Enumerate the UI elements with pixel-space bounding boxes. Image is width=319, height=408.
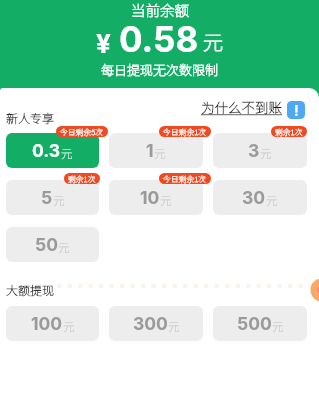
staticText: 今日剩余1次 <box>163 173 207 184</box>
staticText: 元 <box>260 145 272 162</box>
staticText: 0.3 <box>32 140 61 161</box>
staticText: 元 <box>53 192 65 209</box>
staticText: 0.58 <box>119 18 199 60</box>
staticText: 今日剩余5次 <box>60 126 104 137</box>
staticText: 剩余1次 <box>68 173 96 184</box>
button[interactable]: 1 <box>109 133 203 168</box>
staticText: 100 <box>31 313 63 334</box>
other: 帮助 <box>287 101 305 119</box>
staticText: 元 <box>61 145 73 162</box>
staticText: 元 <box>203 27 223 56</box>
staticText: 元 <box>160 192 172 209</box>
staticText: 3 <box>248 140 260 161</box>
button[interactable]: 30 <box>213 180 307 215</box>
staticText: 50 <box>35 234 58 255</box>
staticText: 元 <box>154 145 166 162</box>
staticText: 剩余1次 <box>275 126 303 137</box>
staticText: 5 <box>41 187 53 208</box>
staticText: 元 <box>266 192 278 209</box>
staticText: ! <box>294 102 299 119</box>
staticText: 30 <box>242 187 266 208</box>
button[interactable]: 为什么不到账 <box>201 100 305 120</box>
staticText: 10 <box>140 187 160 208</box>
staticText: 元 <box>58 239 70 256</box>
button[interactable]: 500 <box>213 306 307 341</box>
staticText: 1 <box>146 140 154 161</box>
staticText: ¥ <box>96 28 111 59</box>
staticText: 每日提现无次数限制 <box>101 60 219 79</box>
button[interactable]: 5 <box>6 180 99 215</box>
staticText: 大额提现 <box>6 281 55 298</box>
staticText: 300 <box>133 313 168 334</box>
staticText: 500 <box>237 313 272 334</box>
button[interactable]: 100 <box>6 306 99 341</box>
button[interactable]: 300 <box>109 306 203 341</box>
button[interactable]: 10 <box>109 180 203 215</box>
staticText: 元 <box>272 318 284 335</box>
button[interactable]: 3 <box>213 133 307 168</box>
button[interactable]: 50 <box>6 227 99 262</box>
staticText: 元 <box>168 318 180 335</box>
staticText: 今日剩余1次 <box>163 126 207 137</box>
button[interactable]: 0.3 <box>6 133 99 168</box>
staticText: 新人专享 <box>6 109 55 126</box>
staticText: 当前余额 <box>131 0 189 20</box>
staticText: 元 <box>63 318 75 335</box>
staticText: 为什么不到账 <box>201 97 282 117</box>
